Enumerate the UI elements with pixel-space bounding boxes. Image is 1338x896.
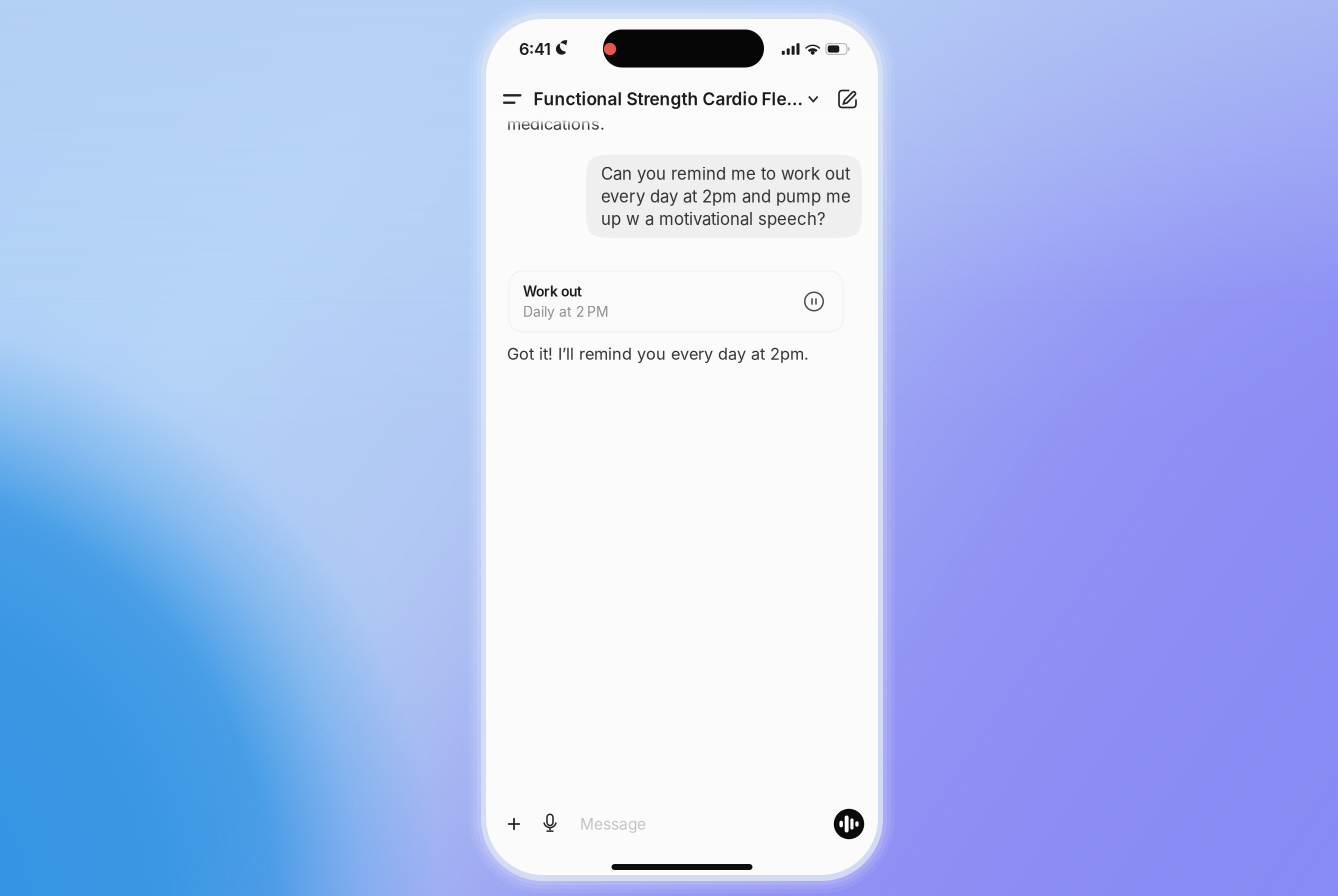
staticText: medications. [507,114,605,134]
button[interactable]: Dictate [532,803,568,845]
staticText: Daily at 2 PM [523,303,609,320]
staticText: Message [580,815,646,833]
button[interactable]: New chat [824,79,858,119]
button[interactable]: Open sidebar [503,79,537,119]
button[interactable]: Functional Strength Cardio Fle… [533,79,819,119]
button[interactable]: Work out [509,271,843,332]
staticText: 6:41 [519,39,551,59]
button[interactable]: Message [568,803,750,845]
staticText: Functional Strength Cardio Fle… [533,89,802,109]
staticText: Got it! I’ll remind you every day at 2pm… [507,344,809,364]
staticText: Work out [523,283,582,300]
staticText: Can you remind me to work out every day … [601,164,851,229]
button[interactable]: Add attachment [496,803,532,845]
button[interactable]: Voice mode [830,803,868,845]
